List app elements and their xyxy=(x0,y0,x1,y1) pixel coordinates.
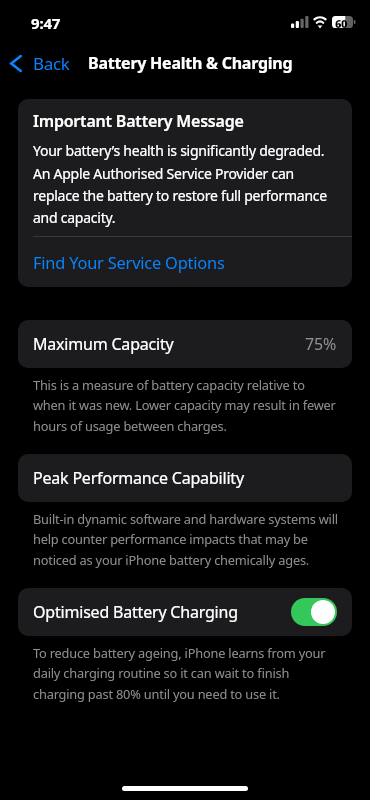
button[interactable]: Optimised Battery Charging xyxy=(18,588,352,636)
staticText: 9:47 xyxy=(31,13,61,33)
staticText: Back xyxy=(33,52,70,75)
button[interactable]: Find Your Service Options xyxy=(18,237,352,287)
staticText: This is a measure of battery capacity re… xyxy=(33,376,338,435)
staticText: 75% xyxy=(305,333,337,355)
staticText: 60 xyxy=(335,16,348,28)
staticText: Battery Health & Charging xyxy=(88,52,293,74)
button[interactable]: Back xyxy=(0,46,78,81)
button[interactable]: Maximum Capacity xyxy=(18,320,352,368)
staticText: Peak Performance Capability xyxy=(33,467,244,489)
staticText: Maximum Capacity xyxy=(33,333,174,355)
staticText: Built-in dynamic software and hardware s… xyxy=(33,510,338,569)
staticText: Your battery’s health is significantly d… xyxy=(33,141,337,227)
staticText: Optimised Battery Charging xyxy=(33,601,238,623)
staticText: Important Battery Message xyxy=(33,110,244,132)
staticText: Find Your Service Options xyxy=(33,251,225,273)
button[interactable]: Peak Performance Capability xyxy=(18,454,352,502)
staticText: To reduce battery ageing, iPhone learns … xyxy=(33,644,338,703)
